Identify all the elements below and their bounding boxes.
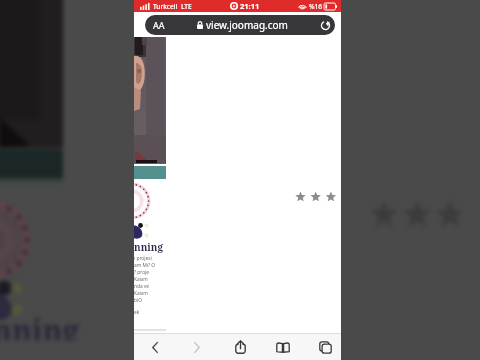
staticText: nning [134, 240, 164, 254]
staticText: biO [134, 297, 142, 304]
button[interactable]: Tabs [305, 334, 345, 360]
staticText: nda ve [134, 283, 149, 290]
staticText: view.joomag.com [206, 18, 288, 32]
staticText: Kasım [134, 290, 148, 297]
button[interactable]: Back [135, 334, 175, 360]
staticText: ı projesi [134, 255, 152, 262]
button[interactable]: Bookmarks [263, 334, 303, 360]
staticText: ? proje [134, 269, 150, 276]
button[interactable]: Share [220, 334, 260, 360]
staticText: 21:11 [240, 1, 260, 11]
staticText: LTE [181, 2, 192, 11]
button[interactable]: Forward [177, 334, 217, 360]
staticText: Kasım [134, 276, 148, 283]
staticText: Turkcell [153, 2, 178, 11]
staticText: am Mı? O [134, 262, 156, 269]
staticText: ek [134, 309, 140, 316]
staticText: AA [153, 19, 165, 31]
staticText: %16 [309, 2, 322, 11]
button[interactable]: AA [145, 15, 335, 35]
staticText: nning [0, 310, 80, 351]
